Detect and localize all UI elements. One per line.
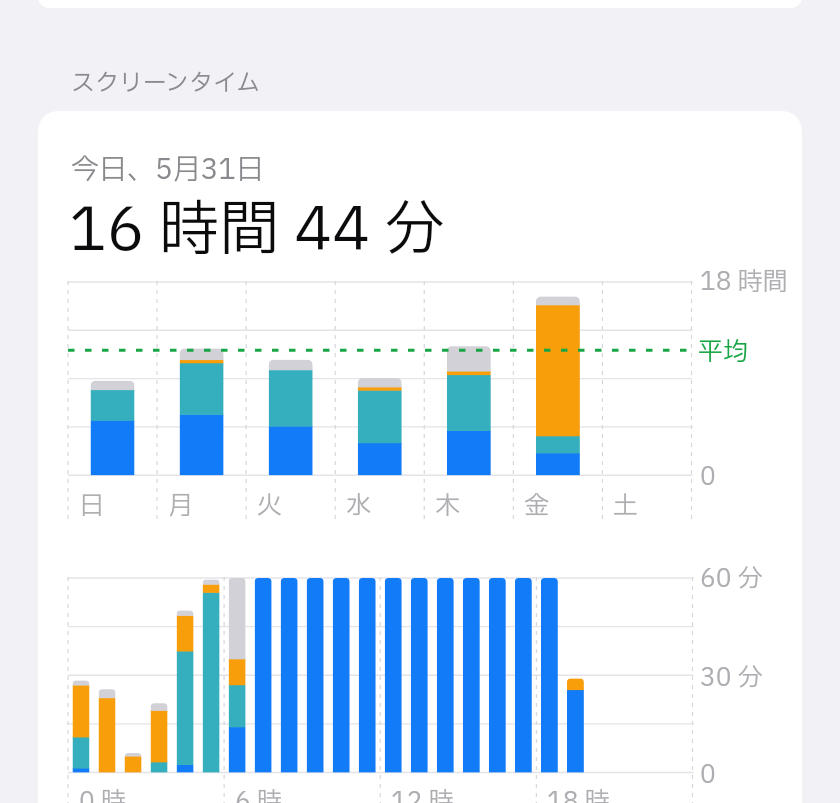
staticText: 月 — [168, 488, 194, 525]
staticText: 0 — [700, 459, 716, 496]
staticText: 土 — [613, 488, 639, 525]
staticText: 平均 — [698, 334, 749, 371]
staticText: 30 分 — [700, 660, 763, 697]
staticText: 18 時間 — [700, 264, 788, 301]
staticText: 火 — [257, 488, 283, 525]
staticText: 12 時 — [391, 784, 454, 803]
staticText: 18 時 — [547, 784, 610, 803]
staticText: 日 — [79, 488, 105, 525]
staticText: 0 — [700, 757, 716, 794]
staticText: 金 — [524, 488, 550, 525]
button[interactable] — [38, 111, 802, 803]
staticText: 16 時間 44 分 — [69, 186, 445, 276]
staticText: 今日、5月31日 — [71, 149, 264, 191]
staticText: 0 時 — [79, 784, 126, 803]
staticText: 木 — [435, 488, 461, 525]
staticText: スクリーンタイム — [71, 66, 261, 102]
staticText: 6 時 — [235, 784, 282, 803]
staticText: 水 — [346, 488, 372, 525]
staticText: 60 分 — [700, 561, 763, 598]
